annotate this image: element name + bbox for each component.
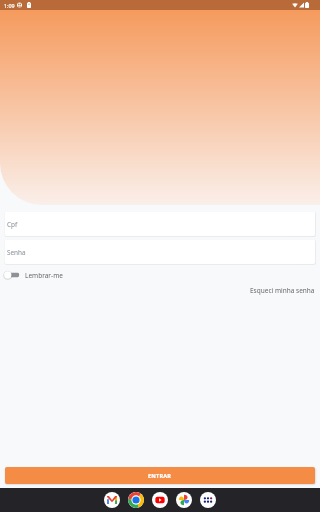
button[interactable]: Lembrar-me [4, 269, 23, 281]
button[interactable]: Chrome [128, 492, 144, 508]
button[interactable]: Senha [5, 240, 315, 264]
button[interactable]: Cpf [5, 212, 315, 236]
staticText: Senha [7, 248, 26, 257]
button[interactable]: Gmail [104, 492, 120, 508]
staticText: Cpf [7, 220, 18, 229]
button[interactable]: Esqueci minha senha [250, 286, 320, 295]
button[interactable]: YouTube [152, 492, 168, 508]
button[interactable]: All apps [200, 492, 216, 508]
button[interactable]: Photos [176, 492, 192, 508]
staticText: Lembrar-me [25, 271, 63, 280]
staticText: ENTRAR [148, 472, 172, 480]
staticText: 1:09 [4, 2, 15, 9]
button[interactable]: ENTRAR [5, 467, 315, 484]
